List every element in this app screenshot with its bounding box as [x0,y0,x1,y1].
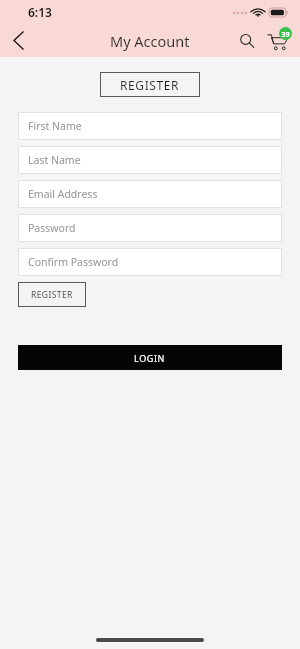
staticText: LOGIN [134,352,166,364]
button[interactable]: LOGIN [18,345,282,370]
staticText: Password [28,221,76,235]
staticText: First Name [28,119,82,133]
staticText: Email Address [28,187,98,201]
button[interactable]: First Name [18,112,282,140]
button[interactable]: REGISTER [100,72,200,97]
button[interactable]: Cart, 39 items [262,25,294,57]
staticText: REGISTER [120,77,180,93]
button[interactable]: REGISTER [18,282,86,307]
staticText: My Account [110,31,190,51]
staticText: 6:13 [28,4,52,20]
button[interactable]: Back [0,24,36,57]
button[interactable]: Confirm Password [18,248,282,276]
staticText: REGISTER [31,289,73,301]
staticText: Confirm Password [28,255,119,269]
staticText: 39 [281,29,290,39]
staticText: Last Name [28,153,81,167]
button[interactable]: Email Address [18,180,282,208]
button[interactable]: Last Name [18,146,282,174]
button[interactable]: Search [232,26,262,56]
button[interactable]: Password [18,214,282,242]
